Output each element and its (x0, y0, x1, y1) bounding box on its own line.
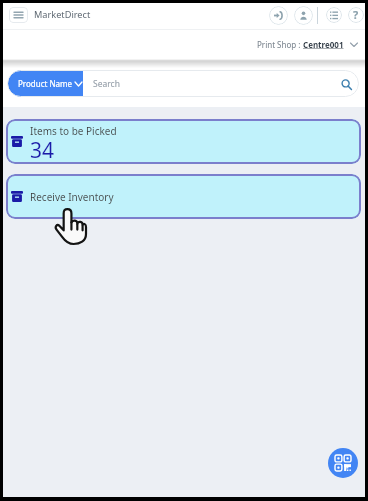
button[interactable]: Product Name (8, 70, 83, 97)
button[interactable]: Orders list (326, 7, 342, 23)
staticText: Product Name (18, 78, 73, 89)
staticText: 34 (30, 136, 55, 164)
button[interactable]: Log in (269, 6, 288, 25)
staticText: Items to be Picked (30, 124, 117, 138)
button[interactable]: Receive Inventory (6, 174, 361, 219)
staticText: MarketDirect (34, 8, 91, 21)
staticText: Receive Inventory (30, 190, 114, 204)
staticText: Search (93, 78, 120, 90)
staticText: Print Shop : (257, 39, 303, 50)
button[interactable]: Help (348, 7, 364, 23)
button[interactable]: Account (294, 6, 313, 25)
button[interactable]: Search (338, 76, 354, 92)
staticText: ? (353, 7, 359, 22)
button[interactable]: Print Shop : (257, 39, 358, 50)
button[interactable]: Items to be Picked (6, 119, 361, 164)
button[interactable]: Scan QR code (328, 448, 358, 478)
button[interactable]: Menu (9, 7, 28, 23)
staticText: Centre001 (303, 39, 344, 50)
